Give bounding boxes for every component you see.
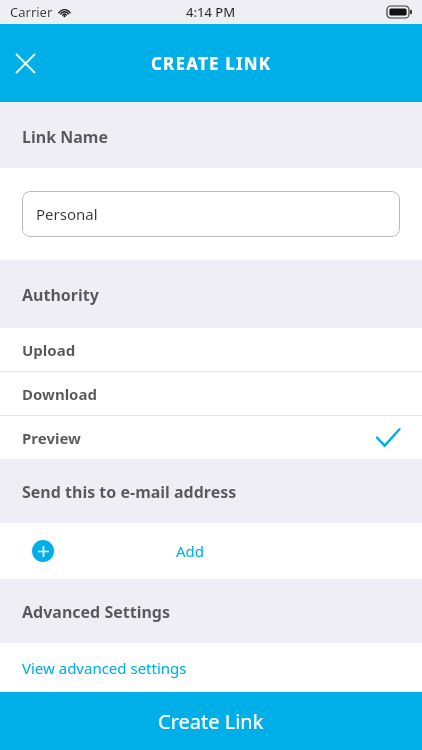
button[interactable]: Close	[6, 44, 44, 82]
staticText: CREATE LINK	[151, 52, 272, 75]
staticText: Authority	[22, 284, 99, 306]
staticText: Advanced Settings	[22, 601, 170, 623]
staticText: Preview	[22, 428, 81, 448]
staticText: Download	[22, 384, 97, 404]
staticText: Carrier	[10, 3, 53, 21]
button[interactable]: Preview	[0, 416, 422, 459]
button[interactable]: View advanced settings	[0, 643, 422, 692]
staticText: 4:14 PM	[186, 3, 236, 21]
staticText: Send this to e-mail address	[22, 481, 237, 503]
button[interactable]: Upload	[0, 328, 422, 371]
staticText: Personal	[36, 204, 98, 224]
button[interactable]: Personal	[22, 191, 400, 237]
staticText: Create Link	[158, 708, 264, 735]
button[interactable]: Download	[0, 372, 422, 415]
staticText: Link Name	[22, 126, 108, 148]
staticText: Upload	[22, 340, 76, 360]
staticText: View advanced settings	[22, 658, 187, 678]
staticText: Add	[176, 541, 205, 561]
button[interactable]: Create Link	[0, 692, 422, 750]
button[interactable]: Add	[0, 523, 422, 579]
